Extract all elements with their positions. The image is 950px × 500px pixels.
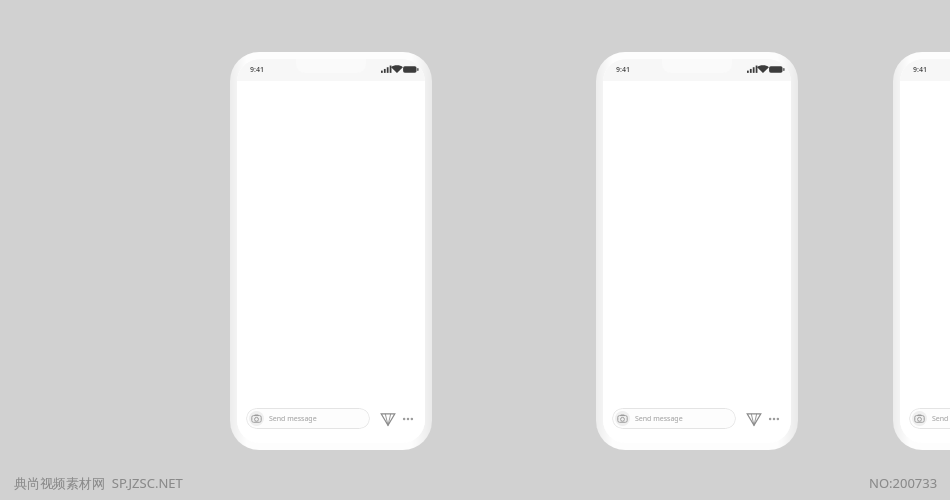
button[interactable]: Send message: [909, 408, 950, 429]
staticText: Send message: [269, 414, 317, 424]
button[interactable]: Send: [744, 409, 764, 429]
staticText: 9:41: [250, 65, 264, 75]
staticText: 典尚视频素材网 SP.JZSC.NET: [14, 474, 183, 492]
staticText: Send message: [932, 414, 950, 424]
staticText: NO:200733: [869, 474, 938, 492]
button[interactable]: More options: [766, 411, 782, 427]
button[interactable]: Send message: [246, 408, 370, 429]
button[interactable]: More options: [400, 411, 416, 427]
button[interactable]: Send message: [612, 408, 736, 429]
staticText: 9:41: [616, 65, 630, 75]
staticText: 9:41: [913, 65, 927, 75]
button[interactable]: Send: [378, 409, 398, 429]
staticText: Send message: [635, 414, 683, 424]
